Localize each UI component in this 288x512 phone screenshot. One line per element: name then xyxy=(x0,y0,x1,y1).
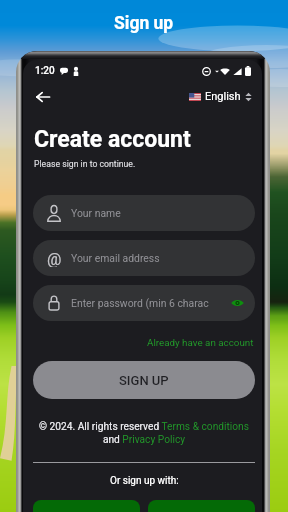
staticText: Your name xyxy=(71,207,121,219)
staticText: @ xyxy=(47,250,61,267)
staticText: SIGN UP xyxy=(119,373,169,388)
button[interactable]: Your name xyxy=(33,195,255,231)
button[interactable]: SIGN UP xyxy=(33,361,255,399)
staticText: Enter password (min 6 charac xyxy=(71,297,209,309)
button[interactable]: Enter password (min 6 charac xyxy=(33,285,255,321)
staticText: Or sign up with: xyxy=(110,475,179,487)
button[interactable]: Show password xyxy=(229,295,245,311)
staticText: Your email address xyxy=(71,252,160,264)
button[interactable]: Already have an account xyxy=(146,335,255,350)
button[interactable]: English xyxy=(187,88,254,105)
staticText: © 2024. All rights reserved Terms & cond… xyxy=(31,421,257,446)
staticText: Already have an account xyxy=(147,337,254,348)
button[interactable]: Sign up with Google xyxy=(33,500,140,512)
button[interactable]: Sign up with Facebook xyxy=(148,500,255,512)
staticText: English xyxy=(205,90,241,103)
staticText: 1:20 xyxy=(35,65,55,77)
staticText: Sign up xyxy=(114,13,174,34)
button[interactable]: @ xyxy=(33,240,255,276)
staticText: Create account xyxy=(34,126,191,153)
button[interactable]: Back xyxy=(32,86,53,107)
staticText: Please sign in to continue. xyxy=(34,159,136,169)
